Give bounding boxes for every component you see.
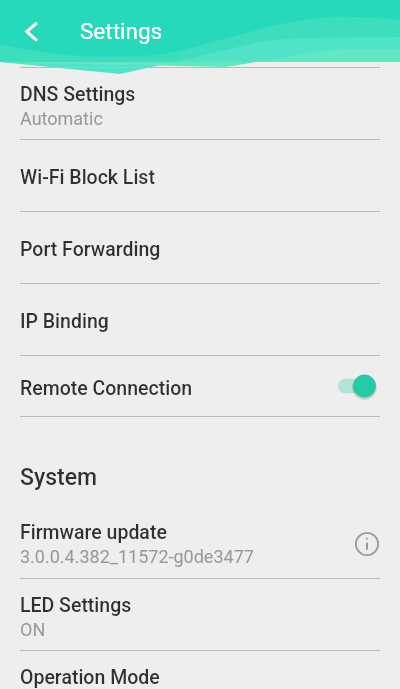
button[interactable]: Operation Mode [0,651,400,689]
staticText: Operation Mode [20,666,160,689]
staticText: ON [20,619,46,640]
staticText: Wi-Fi Block List [20,166,155,189]
staticText: Firmware update [20,521,167,544]
button[interactable]: Port Forwarding [0,212,400,283]
button[interactable]: Information [350,527,384,561]
staticText: LED Settings [20,594,132,617]
staticText: Automatic [20,108,103,129]
button[interactable]: Remote Connection toggle [338,366,380,406]
staticText: DNS Settings [20,83,136,106]
staticText: Settings [80,18,163,44]
staticText: System [20,464,98,491]
button[interactable]: Firmware update [0,506,400,578]
button[interactable]: Wi-Fi Block List [0,140,400,211]
button[interactable]: LED Settings [0,579,400,650]
staticText: 3.0.0.4.382_11572-g0de3477 [20,546,254,567]
button[interactable]: Back [0,0,52,62]
staticText: Port Forwarding [20,238,161,261]
button[interactable]: IP Binding [0,284,400,355]
button[interactable]: Remote Connection [0,356,400,416]
staticText: IP Binding [20,310,109,333]
staticText: Remote Connection [20,377,193,400]
button[interactable]: DNS Settings [0,68,400,139]
